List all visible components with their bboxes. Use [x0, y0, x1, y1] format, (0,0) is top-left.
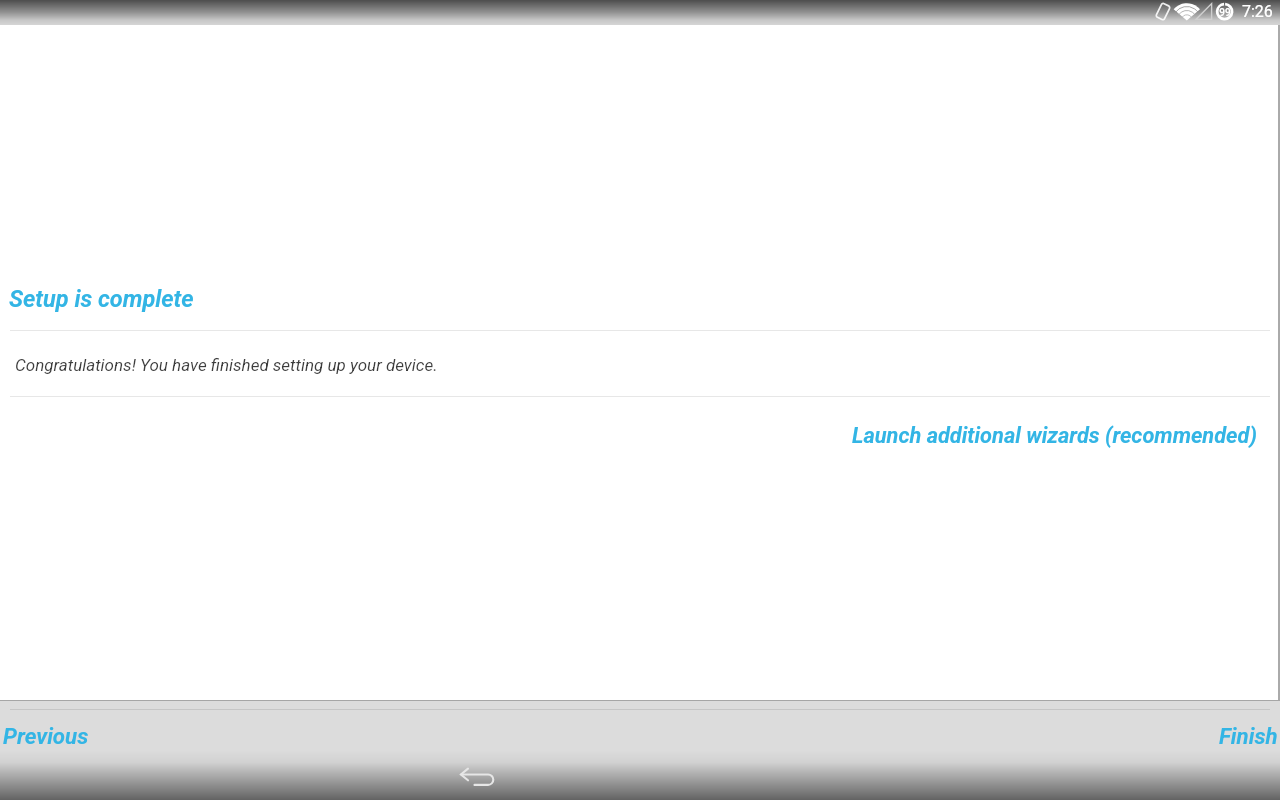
- staticText: 7:26: [1242, 2, 1273, 21]
- staticText: Previous: [3, 723, 89, 749]
- button[interactable]: Setup is complete: [9, 285, 194, 313]
- button[interactable]: Previous: [3, 723, 89, 749]
- staticText: Setup is complete: [9, 285, 194, 313]
- button[interactable]: Finish: [1219, 723, 1278, 749]
- staticText: Launch additional wizards (recommended): [852, 423, 1257, 449]
- staticText: Congratulations! You have finished setti…: [15, 355, 438, 375]
- staticText: Finish: [1219, 723, 1278, 749]
- staticText: 99: [1219, 7, 1231, 19]
- button[interactable]: Launch additional wizards (recommended): [852, 423, 1257, 449]
- button[interactable]: Back: [450, 758, 506, 800]
